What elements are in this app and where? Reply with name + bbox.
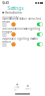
staticText: Charts [14, 86, 20, 91]
staticText: Aerodrome [5, 11, 22, 14]
staticText: More [25, 87, 30, 90]
staticText: Runway data [2, 16, 18, 19]
button[interactable]: More [24, 84, 31, 90]
staticText: Secondary runway lighting toggle [2, 27, 40, 34]
button[interactable]: Settings [7, 6, 23, 11]
staticText: 9:41 [2, 1, 9, 5]
staticText: Approach lighting master switch [2, 37, 38, 44]
button[interactable]: Operational status selected mode [0, 19, 45, 29]
button[interactable]: Secondary runway lighting toggle [0, 29, 45, 39]
staticText: Operational status selected mode [2, 17, 41, 24]
button[interactable]: Approach lighting master switch [0, 39, 45, 49]
button[interactable]: Charts [14, 84, 20, 90]
staticText: Settings [7, 6, 23, 11]
